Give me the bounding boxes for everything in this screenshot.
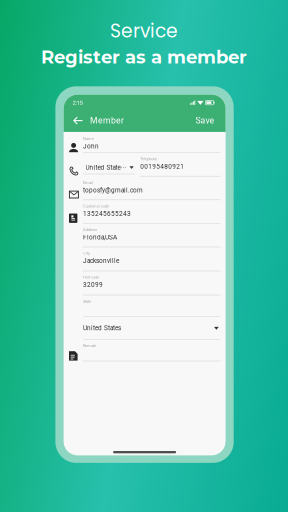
staticText: John: [83, 143, 99, 150]
staticText: Jacksonville: [83, 257, 119, 265]
staticText: United State···: [85, 164, 126, 171]
staticText: City: [83, 251, 90, 256]
staticText: 135245655243: [83, 210, 131, 217]
staticText: 2:15: [73, 99, 83, 106]
button[interactable]: Remark: [64, 340, 226, 361]
staticText: Telephone: [140, 157, 157, 161]
staticText: Customer code: [83, 204, 109, 208]
staticText: 32099: [83, 281, 103, 289]
staticText: Name: [83, 136, 94, 141]
staticText: Post code: [83, 275, 99, 280]
button[interactable]: Name: [64, 133, 226, 153]
button[interactable]: United State···: [85, 163, 134, 173]
staticText: State: [83, 299, 91, 304]
button[interactable]: Back: [67, 111, 89, 131]
button[interactable]: City: [64, 247, 226, 271]
button[interactable]: Save: [196, 111, 215, 131]
staticText: Register as a member: [41, 46, 247, 68]
button[interactable]: Post code: [64, 271, 226, 295]
button[interactable]: United States: [64, 317, 226, 340]
staticText: Email: [83, 180, 93, 185]
staticText: Member: [90, 115, 124, 126]
staticText: Save: [196, 115, 215, 126]
staticText: 00195480921: [140, 163, 184, 170]
staticText: toposfy@gmail.com: [83, 186, 143, 194]
button[interactable]: State: [64, 295, 226, 317]
staticText: Address: [83, 227, 97, 232]
button[interactable]: Address: [64, 224, 226, 247]
staticText: Service: [110, 18, 178, 44]
staticText: Remark: [83, 343, 96, 348]
staticText: United States: [83, 324, 121, 332]
button[interactable]: Email: [64, 177, 226, 200]
button[interactable]: Customer code: [64, 200, 226, 224]
staticText: Florida,USA: [83, 234, 117, 241]
